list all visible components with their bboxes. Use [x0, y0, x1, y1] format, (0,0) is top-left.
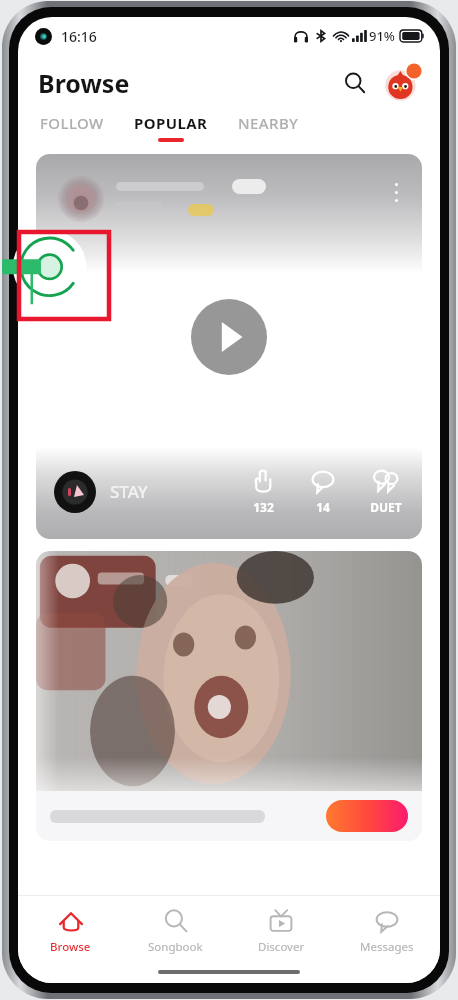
button[interactable]: Messages [334, 901, 440, 961]
staticText: 91% [369, 27, 395, 45]
staticText: FOLLOW [40, 113, 104, 133]
button[interactable]: Sing [36, 551, 422, 841]
staticText: DUET [370, 499, 402, 515]
button[interactable]: Sing [326, 800, 408, 832]
button[interactable]: FOLLOW [38, 111, 106, 144]
button[interactable]: Songbook [123, 901, 228, 961]
button[interactable]: NEARBY [236, 111, 301, 144]
button[interactable]: Duet [366, 466, 406, 517]
button[interactable]: POPULAR [132, 111, 210, 144]
button[interactable]: Comments [306, 466, 340, 517]
button[interactable]: Play [191, 299, 267, 375]
button[interactable]: Search [336, 64, 374, 102]
staticText: 14 [316, 499, 330, 515]
button[interactable]: Likes [246, 466, 280, 517]
button[interactable]: Browse [18, 901, 123, 961]
button[interactable]: Discover [228, 901, 334, 961]
staticText: Songbook [148, 939, 203, 955]
button[interactable]: More options [36, 154, 422, 539]
staticText: Browse [38, 66, 130, 100]
staticText: Browse [50, 939, 91, 955]
staticText: Messages [360, 939, 414, 955]
staticText: POPULAR [134, 113, 208, 133]
button[interactable]: More options [384, 172, 408, 212]
staticText: 16:16 [61, 27, 97, 46]
button[interactable]: Profile, 2 notifications [382, 63, 422, 103]
staticText: Discover [258, 939, 305, 955]
staticText: 132 [253, 499, 274, 515]
staticText: NEARBY [238, 113, 299, 133]
staticText: STAY [110, 480, 148, 503]
